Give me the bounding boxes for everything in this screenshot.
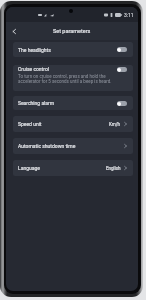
button[interactable]: Speed unit bbox=[13, 116, 133, 132]
staticText: Language bbox=[18, 165, 40, 171]
staticText: The headlights bbox=[18, 47, 51, 53]
staticText: Set parameters bbox=[53, 28, 91, 34]
staticText: Automatic shutdown time bbox=[18, 143, 76, 149]
staticText: Searching alarm bbox=[18, 100, 55, 106]
staticText: Km/h bbox=[109, 122, 121, 127]
button[interactable]: Back bbox=[6, 23, 22, 39]
button[interactable]: The headlights bbox=[13, 42, 133, 57]
button[interactable]: Language bbox=[13, 160, 133, 176]
button[interactable]: Cruise control bbox=[13, 65, 133, 91]
button[interactable]: Toggle bbox=[117, 101, 127, 106]
button[interactable]: Toggle bbox=[117, 47, 127, 52]
button[interactable]: Automatic shutdown time bbox=[13, 138, 133, 154]
staticText: 3:11 bbox=[124, 12, 134, 18]
staticText: To turn on cruise control, press and hol… bbox=[18, 74, 127, 84]
staticText: Speed unit bbox=[18, 121, 42, 127]
button[interactable]: Toggle bbox=[117, 67, 127, 72]
staticText: Cruise control bbox=[18, 66, 49, 72]
button[interactable]: Searching alarm bbox=[13, 96, 133, 110]
staticText: English bbox=[106, 166, 121, 171]
